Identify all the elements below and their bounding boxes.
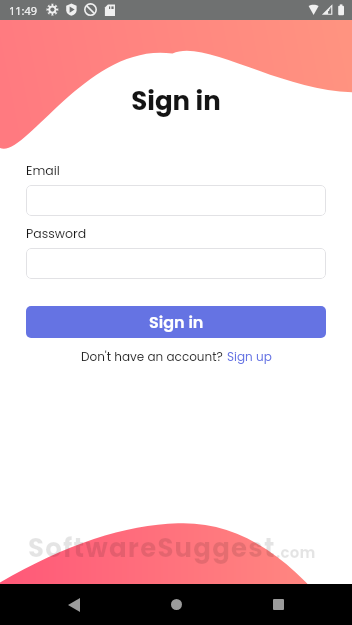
staticText: 11:49 bbox=[9, 3, 38, 18]
staticText: Password bbox=[26, 225, 87, 242]
staticText: Don't have an account? bbox=[81, 348, 227, 365]
button[interactable]: Back bbox=[54, 584, 94, 625]
staticText: Sign in bbox=[149, 311, 204, 333]
button[interactable]: Sign in bbox=[26, 306, 326, 338]
staticText: Email bbox=[26, 162, 60, 179]
button[interactable] bbox=[26, 248, 326, 279]
staticText: .com bbox=[276, 542, 316, 563]
button[interactable]: Home bbox=[156, 584, 196, 625]
staticText: Sign up bbox=[227, 348, 272, 365]
button[interactable] bbox=[26, 185, 326, 216]
staticText: SoftwareSuggest bbox=[28, 530, 276, 566]
button[interactable]: Recent apps bbox=[258, 584, 298, 625]
staticText: Sign in bbox=[0, 83, 352, 119]
button[interactable]: Sign up bbox=[227, 348, 272, 365]
